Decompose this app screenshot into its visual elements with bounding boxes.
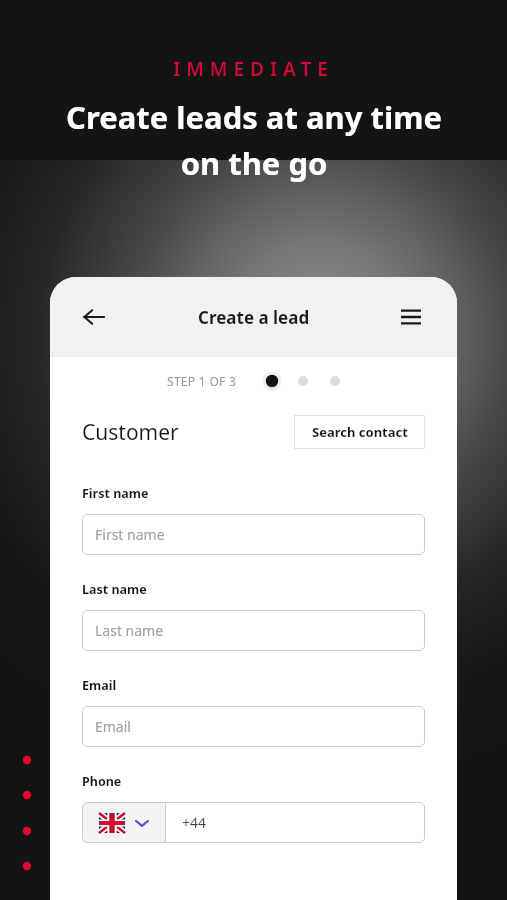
button[interactable]: Email: [82, 706, 425, 747]
staticText: IMMEDIATE: [173, 56, 334, 82]
staticText: STEP 1 OF 3: [167, 373, 237, 389]
staticText: Email: [82, 677, 117, 694]
button[interactable]: Last name: [82, 610, 425, 651]
button[interactable]: Search contact: [294, 415, 425, 449]
staticText: Last name: [82, 581, 147, 598]
staticText: +44: [182, 813, 207, 832]
staticText: First name: [95, 525, 165, 544]
staticText: Phone: [82, 773, 122, 790]
staticText: Create leads at any time on the go: [66, 96, 442, 184]
staticText: Customer: [82, 418, 179, 447]
staticText: Last name: [95, 621, 164, 640]
button[interactable]: Select country code: [82, 802, 165, 843]
staticText: First name: [82, 485, 149, 502]
button[interactable]: First name: [82, 514, 425, 555]
staticText: Email: [95, 717, 131, 736]
button[interactable]: +44: [166, 802, 425, 843]
button[interactable]: Back: [74, 297, 114, 337]
button[interactable]: Menu: [391, 297, 431, 337]
staticText: Search contact: [312, 423, 408, 441]
staticText: Create a lead: [198, 306, 310, 329]
